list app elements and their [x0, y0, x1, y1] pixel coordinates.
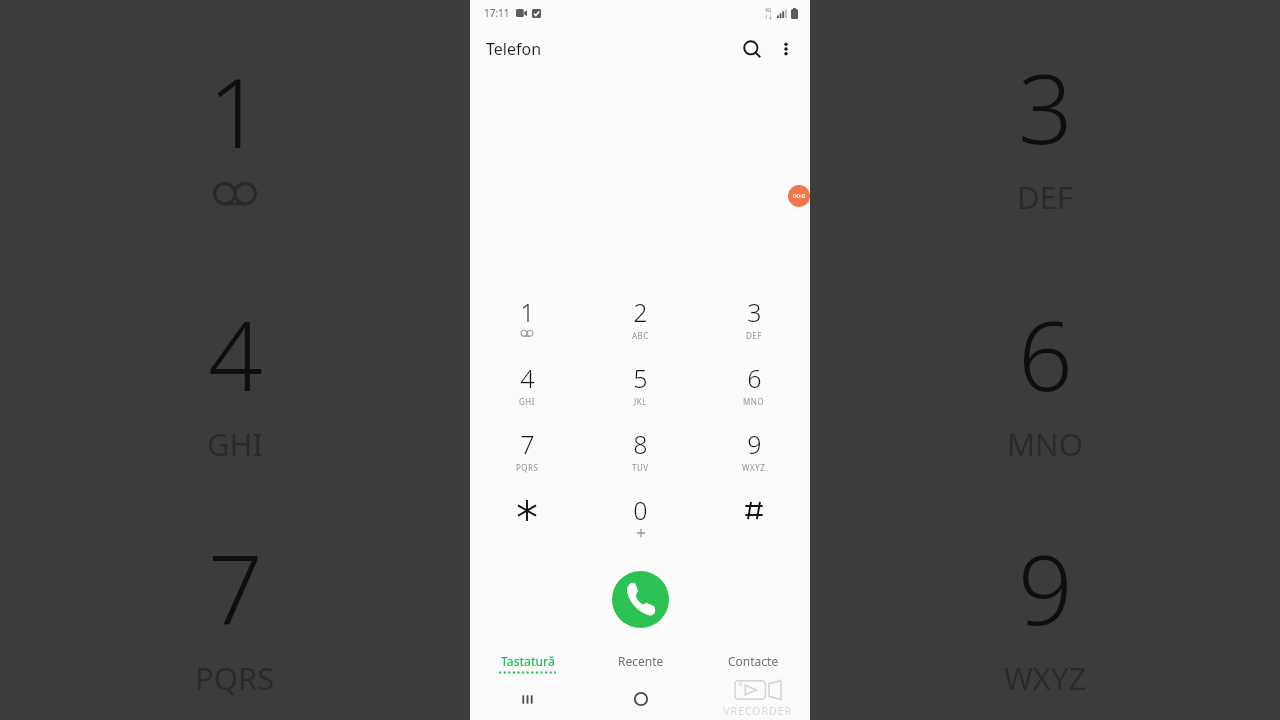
button[interactable]: Key 1 — [470, 295, 584, 361]
button[interactable]: Recente — [584, 648, 697, 678]
staticText: GHI — [207, 423, 264, 465]
staticText: DEF — [1017, 176, 1073, 218]
button[interactable]: Home — [584, 678, 697, 720]
button[interactable]: Key # — [697, 493, 810, 559]
button[interactable]: Key 7 — [470, 427, 584, 493]
staticText: 6 — [747, 361, 762, 395]
staticText: 4 — [520, 361, 535, 395]
button[interactable]: Key 2 — [584, 295, 697, 361]
staticText: 8 — [633, 427, 648, 461]
staticText: 5 — [633, 361, 648, 395]
button[interactable]: Key 3 — [697, 295, 810, 361]
staticText: MNO — [743, 396, 765, 407]
button[interactable]: Tastatură — [470, 648, 584, 678]
staticText: 17:11 — [484, 6, 510, 20]
staticText: DEF — [746, 330, 762, 341]
button[interactable]: Search — [734, 31, 770, 67]
staticText: 7 — [520, 427, 535, 461]
staticText: 2 — [633, 295, 648, 329]
staticText: 9 — [1018, 522, 1073, 653]
staticText: PQRS — [516, 462, 539, 473]
staticText: WXYZ — [1004, 657, 1087, 699]
staticText: GHI — [519, 396, 535, 407]
staticText: 6 — [1018, 288, 1073, 419]
button[interactable]: Call — [612, 571, 669, 628]
staticText: MNO — [1007, 423, 1083, 465]
staticText: 4 — [208, 288, 263, 419]
staticText: 3 — [747, 295, 762, 329]
staticText: Telefon — [486, 38, 542, 60]
button[interactable]: Key 8 — [584, 427, 697, 493]
staticText: 4G — [765, 7, 772, 14]
staticText: 9 — [747, 427, 762, 461]
staticText: ↑↓ — [764, 14, 773, 20]
staticText: ABC — [632, 330, 649, 341]
staticText: PQRS — [195, 657, 275, 699]
button[interactable]: More options — [770, 33, 802, 65]
staticText: 7 — [208, 522, 263, 653]
button[interactable]: Key 5 — [584, 361, 697, 427]
staticText: TUV — [632, 462, 649, 473]
button[interactable]: Key 6 — [697, 361, 810, 427]
staticText: 3 — [1018, 41, 1073, 172]
button[interactable]: Key 0 — [584, 493, 697, 559]
staticText: WXYZ — [742, 462, 766, 473]
button[interactable]: Recent apps — [470, 678, 584, 720]
staticText: 1 — [208, 45, 263, 176]
staticText: 1 — [520, 295, 535, 329]
staticText: Tastatură — [501, 653, 555, 669]
staticText: 0 — [633, 493, 648, 527]
button[interactable]: Contacte — [697, 648, 810, 678]
button[interactable]: Key 4 — [470, 361, 584, 427]
staticText: JKL — [634, 396, 647, 407]
staticText: Recente — [618, 653, 664, 669]
staticText: Contacte — [728, 653, 779, 669]
staticText: VRECORDER — [723, 703, 792, 716]
button[interactable]: Key 9 — [697, 427, 810, 493]
button[interactable]: Key * — [470, 493, 584, 559]
staticText: 00:0 — [793, 192, 805, 200]
